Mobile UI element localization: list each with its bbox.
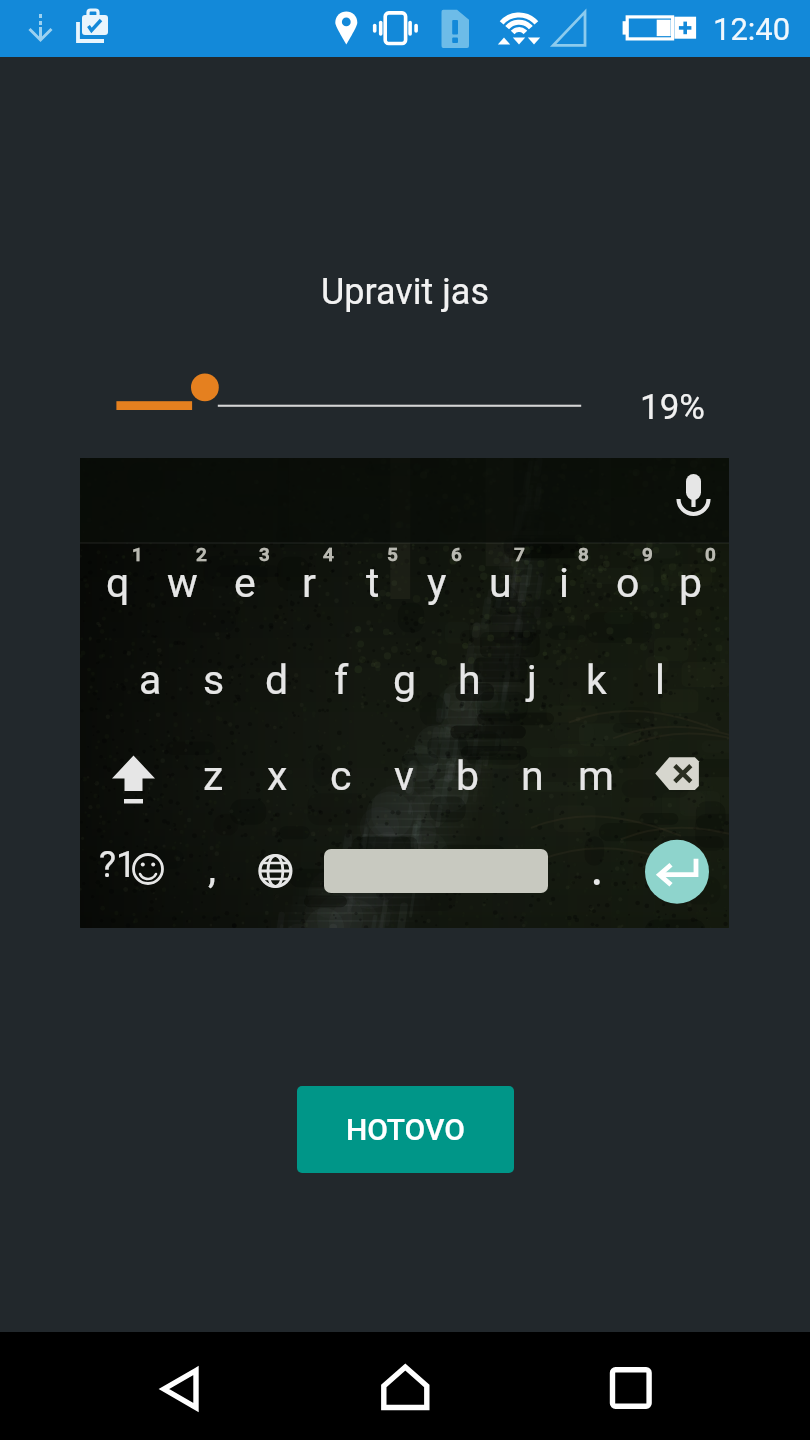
- staticText: 1: [132, 543, 143, 565]
- button[interactable]: Keyboard preview: [80, 458, 729, 928]
- staticText: 9: [642, 543, 653, 565]
- staticText: q: [106, 559, 130, 607]
- button[interactable]: Back: [0, 1332, 270, 1440]
- staticText: 5: [387, 543, 398, 565]
- staticText: f: [334, 656, 349, 704]
- staticText: g: [393, 656, 417, 704]
- staticText: 12:40: [713, 11, 791, 47]
- staticText: 2: [196, 543, 207, 565]
- staticText: 19%: [640, 387, 705, 428]
- staticText: 0: [705, 543, 716, 565]
- staticText: n: [521, 752, 544, 800]
- staticText: i: [559, 559, 569, 607]
- staticText: ,: [208, 844, 217, 892]
- staticText: k: [586, 656, 607, 704]
- staticText: HOTOVO: [346, 1112, 465, 1147]
- staticText: l: [655, 656, 665, 704]
- staticText: z: [203, 752, 224, 800]
- staticText: d: [265, 656, 289, 704]
- staticText: ?1: [99, 844, 137, 886]
- staticText: o: [616, 559, 640, 607]
- staticText: v: [394, 752, 414, 800]
- staticText: 7: [514, 543, 525, 565]
- staticText: 6: [451, 543, 462, 565]
- staticText: s: [203, 656, 225, 704]
- staticText: w: [167, 559, 198, 607]
- staticText: h: [458, 656, 481, 704]
- staticText: Upravit jas: [0, 271, 810, 313]
- staticText: b: [456, 752, 480, 800]
- staticText: r: [302, 559, 316, 607]
- staticText: c: [330, 752, 352, 800]
- staticText: y: [427, 559, 447, 607]
- staticText: u: [489, 559, 512, 607]
- button[interactable]: Home: [270, 1332, 540, 1440]
- staticText: m: [578, 752, 614, 800]
- button[interactable]: Recent apps: [540, 1332, 810, 1440]
- button[interactable]: HOTOVO: [297, 1086, 514, 1173]
- button[interactable]: Brightness slider: [0, 0, 810, 1440]
- staticText: e: [234, 559, 256, 607]
- staticText: t: [366, 559, 380, 607]
- staticText: 3: [259, 543, 270, 565]
- staticText: p: [679, 559, 703, 607]
- staticText: x: [267, 752, 288, 800]
- staticText: a: [139, 656, 162, 704]
- staticText: j: [527, 656, 537, 704]
- staticText: 8: [578, 543, 589, 565]
- staticText: 4: [323, 543, 334, 565]
